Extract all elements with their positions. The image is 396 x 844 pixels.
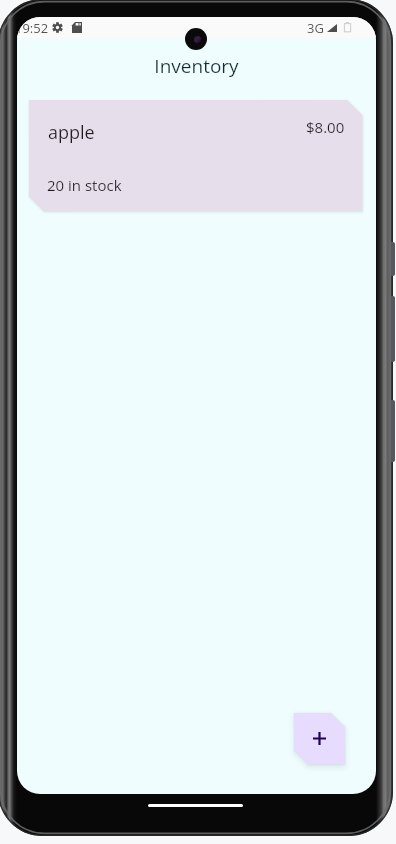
button[interactable]: apple — [29, 100, 362, 211]
staticText: Inventory — [154, 53, 239, 79]
staticText: 19:52 — [17, 19, 49, 37]
button[interactable]: Add item — [294, 713, 345, 764]
staticText: 3G — [307, 19, 324, 37]
staticText: apple — [48, 120, 95, 145]
staticText: 20 in stock — [47, 175, 122, 195]
staticText: $8.00 — [306, 117, 345, 137]
